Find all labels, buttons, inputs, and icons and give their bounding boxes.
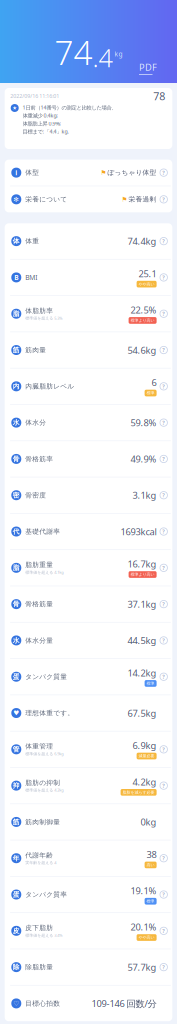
- button[interactable]: 脂: [5, 550, 172, 586]
- staticText: 体水分量: [25, 636, 53, 644]
- staticText: 基礎代謝率: [25, 527, 60, 536]
- staticText: 蛋: [13, 673, 20, 681]
- staticText: 体重減少 0.4kg;: [22, 112, 57, 119]
- staticText: ?: [162, 891, 165, 898]
- staticText: 脂肪を減らす必要: [123, 790, 155, 795]
- button[interactable]: ✻: [5, 186, 172, 212]
- staticText: 標準値を超える 6.9kg: [25, 751, 63, 756]
- staticText: 4.2kg: [133, 776, 157, 788]
- staticText: 1693kcal: [121, 525, 157, 538]
- staticText: 代: [13, 527, 20, 536]
- staticText: 44.5kg: [128, 634, 157, 647]
- button[interactable]: 骨: [5, 586, 172, 622]
- staticText: 骨: [13, 455, 20, 463]
- staticText: kg: [115, 49, 123, 58]
- button[interactable]: 脂: [5, 296, 172, 331]
- staticText: ?: [162, 601, 165, 608]
- staticText: 骨格筋量: [25, 600, 53, 608]
- button[interactable]: 除: [5, 949, 172, 985]
- staticText: 57.7kg: [128, 961, 157, 973]
- staticText: 除脂肪量: [25, 963, 53, 971]
- button[interactable]: ♡: [5, 986, 172, 1021]
- staticText: 体脂肪上昇 0.9%;: [22, 120, 60, 127]
- staticText: 脂: [13, 310, 20, 318]
- staticText: 水: [13, 418, 20, 427]
- staticText: 水: [13, 636, 20, 644]
- staticText: 74.4kg: [128, 235, 157, 247]
- button[interactable]: PDF: [139, 61, 157, 75]
- staticText: 内: [13, 382, 20, 390]
- staticText: 3.1kg: [133, 489, 157, 501]
- staticText: 6.9kg: [133, 739, 157, 752]
- staticText: 22.5%: [131, 304, 157, 316]
- staticText: 14.2kg: [128, 667, 157, 679]
- staticText: ぽっちゃり体型: [108, 168, 157, 177]
- staticText: 体水分: [25, 418, 46, 427]
- button[interactable]: 水: [5, 405, 172, 440]
- staticText: 筋肉制御量: [25, 818, 60, 826]
- staticText: 16.7kg: [128, 558, 157, 570]
- staticText: 標準: [147, 899, 155, 904]
- button[interactable]: 体: [5, 223, 172, 259]
- button[interactable]: i: [5, 160, 172, 186]
- staticText: 皮: [13, 927, 20, 935]
- staticText: 体重管理: [25, 742, 53, 750]
- staticText: 高い: [147, 862, 155, 867]
- button[interactable]: 密: [5, 477, 172, 513]
- staticText: 6: [152, 376, 157, 389]
- staticText: 筋: [13, 818, 20, 826]
- staticText: i: [15, 168, 17, 177]
- button[interactable]: 代: [5, 514, 172, 549]
- staticText: PDF: [139, 61, 157, 73]
- staticText: 19.1%: [131, 884, 157, 897]
- staticText: 標準より高い: [131, 572, 155, 577]
- button[interactable]: 内: [5, 368, 172, 404]
- staticText: ?: [162, 238, 165, 245]
- staticText: ?: [162, 196, 165, 203]
- staticText: ♥: [13, 709, 19, 717]
- staticText: やや高い: [139, 282, 155, 287]
- staticText: 標準値を超える 4.2kg: [25, 787, 63, 793]
- staticText: 標準値を超える 3.4%: [25, 933, 62, 938]
- staticText: タンパク質率: [25, 890, 67, 899]
- staticText: 目標まで: 「4.4」kg.: [22, 128, 68, 135]
- staticText: BMI: [25, 273, 37, 282]
- button[interactable]: 筋: [5, 332, 172, 368]
- staticText: 密: [13, 491, 20, 499]
- staticText: ?: [162, 782, 165, 789]
- staticText: 除: [13, 963, 20, 971]
- staticText: 体重: [25, 237, 39, 245]
- button[interactable]: 蛋: [5, 659, 172, 694]
- button[interactable]: B: [5, 260, 172, 295]
- staticText: 37.1kg: [128, 598, 157, 610]
- staticText: 脂肪の抑制: [25, 779, 60, 787]
- button[interactable]: 管: [5, 731, 172, 767]
- button[interactable]: 骨: [5, 441, 172, 477]
- staticText: 74: [54, 30, 92, 74]
- staticText: 標準値を超える 5.3%: [25, 315, 62, 321]
- button[interactable]: 抑: [5, 768, 172, 803]
- staticText: ?: [162, 310, 165, 317]
- staticText: 49.9%: [131, 453, 157, 465]
- staticText: ?: [162, 746, 165, 753]
- staticText: 栄養過剰: [129, 195, 157, 203]
- button[interactable]: 蛋: [5, 877, 172, 912]
- button[interactable]: 水: [5, 623, 172, 658]
- staticText: 内臓脂肪レベル: [25, 382, 74, 390]
- staticText: 目標心拍数: [25, 999, 60, 1007]
- staticText: 理想体重です。: [25, 709, 74, 717]
- button[interactable]: ♥: [5, 695, 172, 731]
- staticText: 皮下脂肪: [25, 924, 53, 932]
- staticText: ?: [162, 169, 165, 176]
- button[interactable]: 皮: [5, 913, 172, 949]
- button[interactable]: 筋: [5, 804, 172, 840]
- staticText: 59.8%: [131, 416, 157, 429]
- staticText: 20.1%: [131, 921, 157, 933]
- staticText: 体脂肪率: [25, 307, 53, 315]
- staticText: 標準: [147, 681, 155, 686]
- staticText: 骨密度: [25, 491, 46, 499]
- staticText: ⚑: [100, 169, 106, 176]
- staticText: ?: [162, 492, 165, 499]
- staticText: ?: [162, 673, 165, 680]
- button[interactable]: 年: [5, 840, 172, 876]
